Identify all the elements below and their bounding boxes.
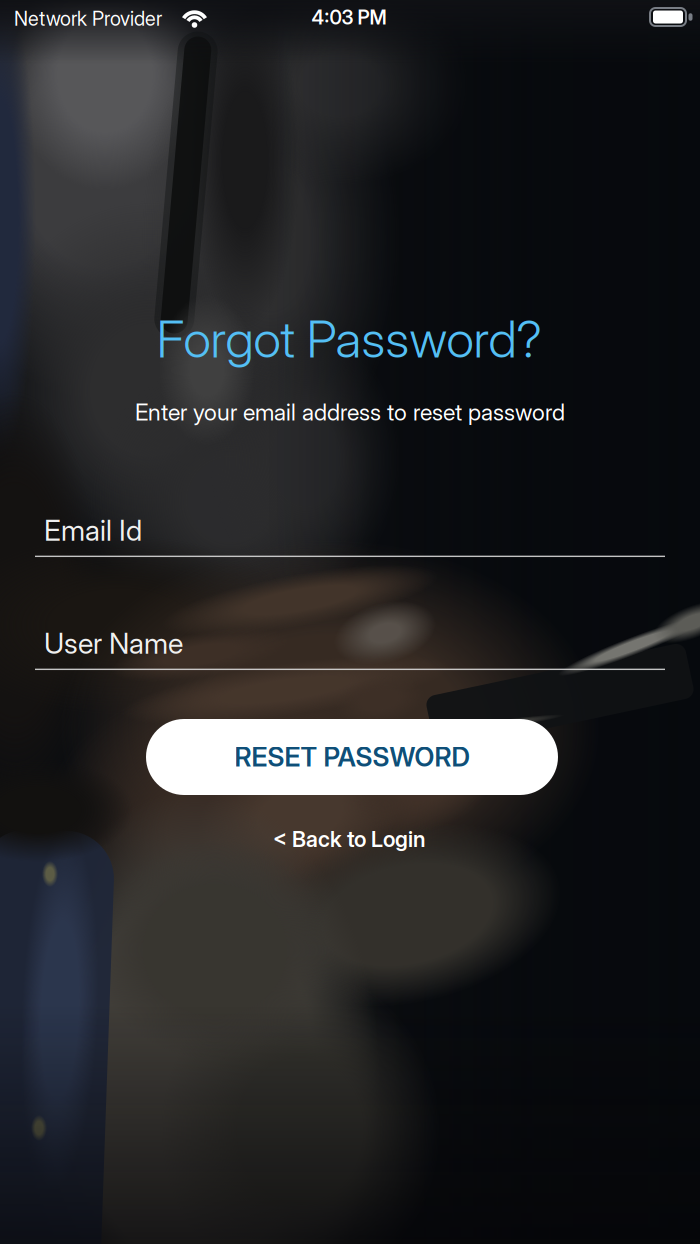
staticText: Email Id [44, 513, 142, 548]
staticText: Network Provider [14, 7, 162, 30]
staticText: Enter your email address to reset passwo… [135, 398, 565, 426]
button[interactable]: < Back to Login [273, 826, 425, 852]
button[interactable]: RESET PASSWORD [146, 719, 558, 795]
button[interactable]: User Name [35, 626, 665, 670]
staticText: < Back to Login [273, 826, 425, 852]
staticText: User Name [44, 626, 183, 661]
staticText: Forgot Password? [156, 308, 541, 370]
staticText: RESET PASSWORD [234, 741, 469, 773]
button[interactable]: Email Id [35, 513, 665, 557]
staticText: 4:03 PM [311, 6, 386, 29]
